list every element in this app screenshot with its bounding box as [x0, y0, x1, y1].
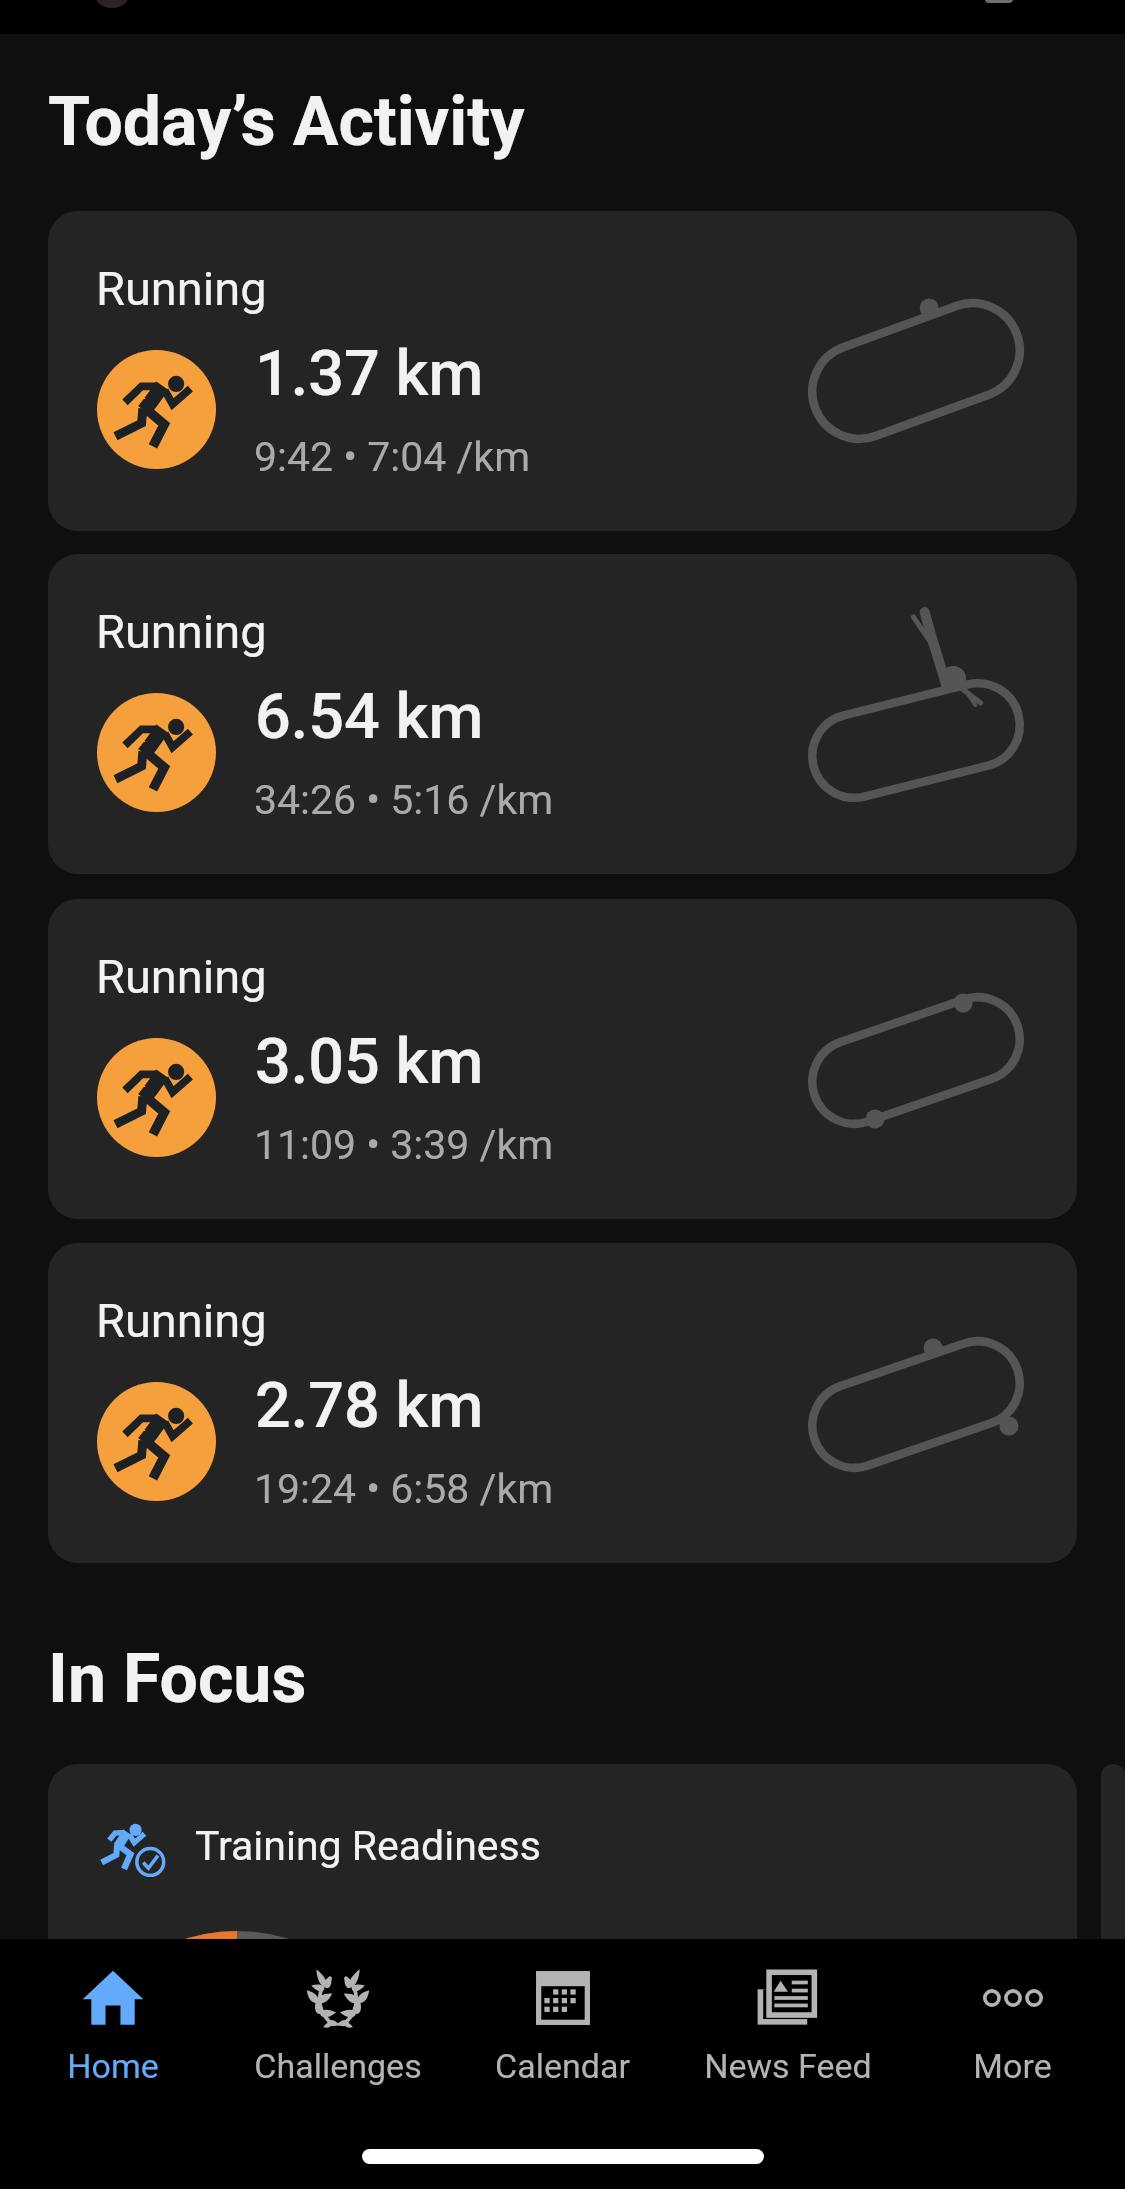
staticText: 19:24 • 6:58 /km: [254, 1465, 554, 1513]
staticText: 3.05 km: [255, 1025, 484, 1099]
button[interactable]: Home: [0, 1939, 225, 2086]
button[interactable]: Calendar: [450, 1939, 675, 2086]
button[interactable]: Running: [48, 211, 1077, 531]
staticText: 6.54 km: [255, 680, 484, 754]
staticText: Running: [96, 261, 267, 316]
button[interactable]: Running: [48, 899, 1077, 1219]
button[interactable]: News Feed: [675, 1939, 900, 2086]
staticText: Running: [96, 949, 267, 1004]
staticText: Running: [96, 604, 267, 659]
staticText: Challenges: [254, 2046, 422, 2086]
staticText: Running: [96, 1293, 267, 1348]
staticText: 34:26 • 5:16 /km: [254, 776, 554, 824]
staticText: 9:42 • 7:04 /km: [254, 433, 531, 481]
staticText: News Feed: [704, 2046, 872, 2086]
button[interactable]: Challenges: [225, 1939, 450, 2086]
button[interactable]: Running: [48, 554, 1077, 874]
staticText: In Focus: [48, 1639, 307, 1719]
button[interactable]: Training Readiness: [48, 1764, 1077, 2064]
staticText: Home: [67, 2046, 159, 2086]
staticText: 1.37 km: [255, 337, 484, 411]
staticText: 2.78 km: [255, 1369, 484, 1443]
staticText: Training Readiness: [195, 1822, 541, 1870]
staticText: More: [973, 2046, 1052, 2086]
button[interactable]: Running: [48, 1243, 1077, 1563]
staticText: Today’s Activity: [48, 82, 525, 162]
staticText: Calendar: [495, 2046, 630, 2086]
staticText: 11:09 • 3:39 /km: [254, 1121, 554, 1169]
button[interactable]: More: [900, 1939, 1125, 2086]
